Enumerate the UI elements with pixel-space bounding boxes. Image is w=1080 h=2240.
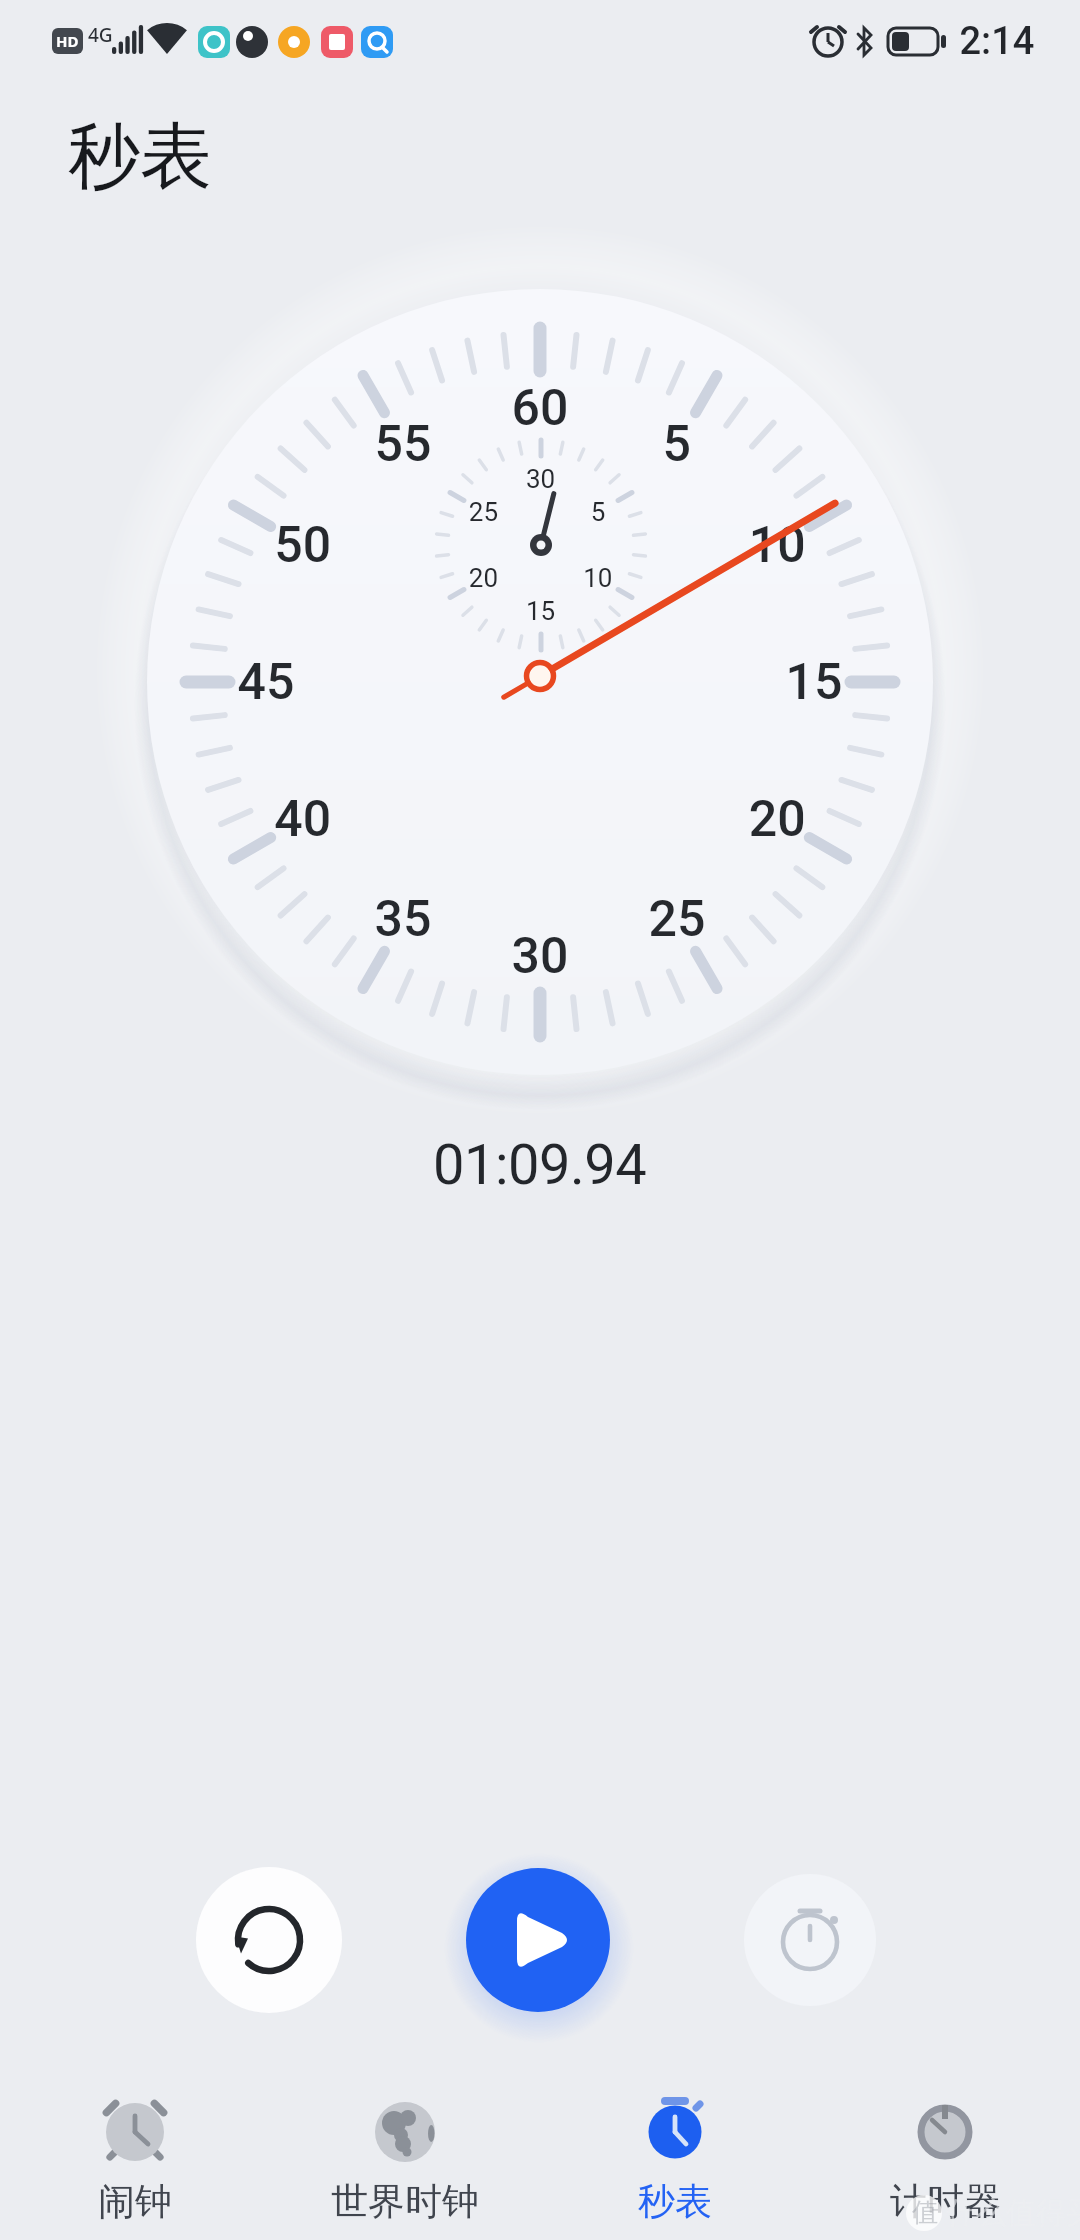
button[interactable]: 闹钟 xyxy=(0,2072,270,2240)
staticText: 世界时钟 xyxy=(331,2178,479,2225)
button[interactable]: 世界时钟 xyxy=(270,2072,540,2240)
staticText: 秒表 xyxy=(68,112,212,203)
staticText: 值 xyxy=(912,2196,938,2229)
staticText: 闹钟 xyxy=(98,2178,172,2225)
button[interactable]: 计时器 xyxy=(810,2072,1080,2240)
button[interactable] xyxy=(196,1867,342,2013)
staticText: 01:09.94 xyxy=(433,1132,647,1198)
button[interactable] xyxy=(466,1868,610,2012)
button[interactable]: 秒表 xyxy=(540,2072,810,2240)
staticText: 秒表 xyxy=(638,2178,712,2225)
staticText: 什么值得买 xyxy=(946,2194,1080,2232)
staticText: 计时器 xyxy=(890,2178,1001,2225)
button[interactable] xyxy=(744,1874,876,2006)
